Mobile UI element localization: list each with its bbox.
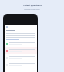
button[interactable]: [5, 47, 37, 54]
staticText: Latest Questions: [23, 4, 42, 7]
button[interactable]: [5, 54, 37, 61]
button[interactable]: [5, 40, 37, 47]
staticText: See them as they arrive: [24, 9, 40, 11]
button[interactable]: [5, 61, 37, 68]
